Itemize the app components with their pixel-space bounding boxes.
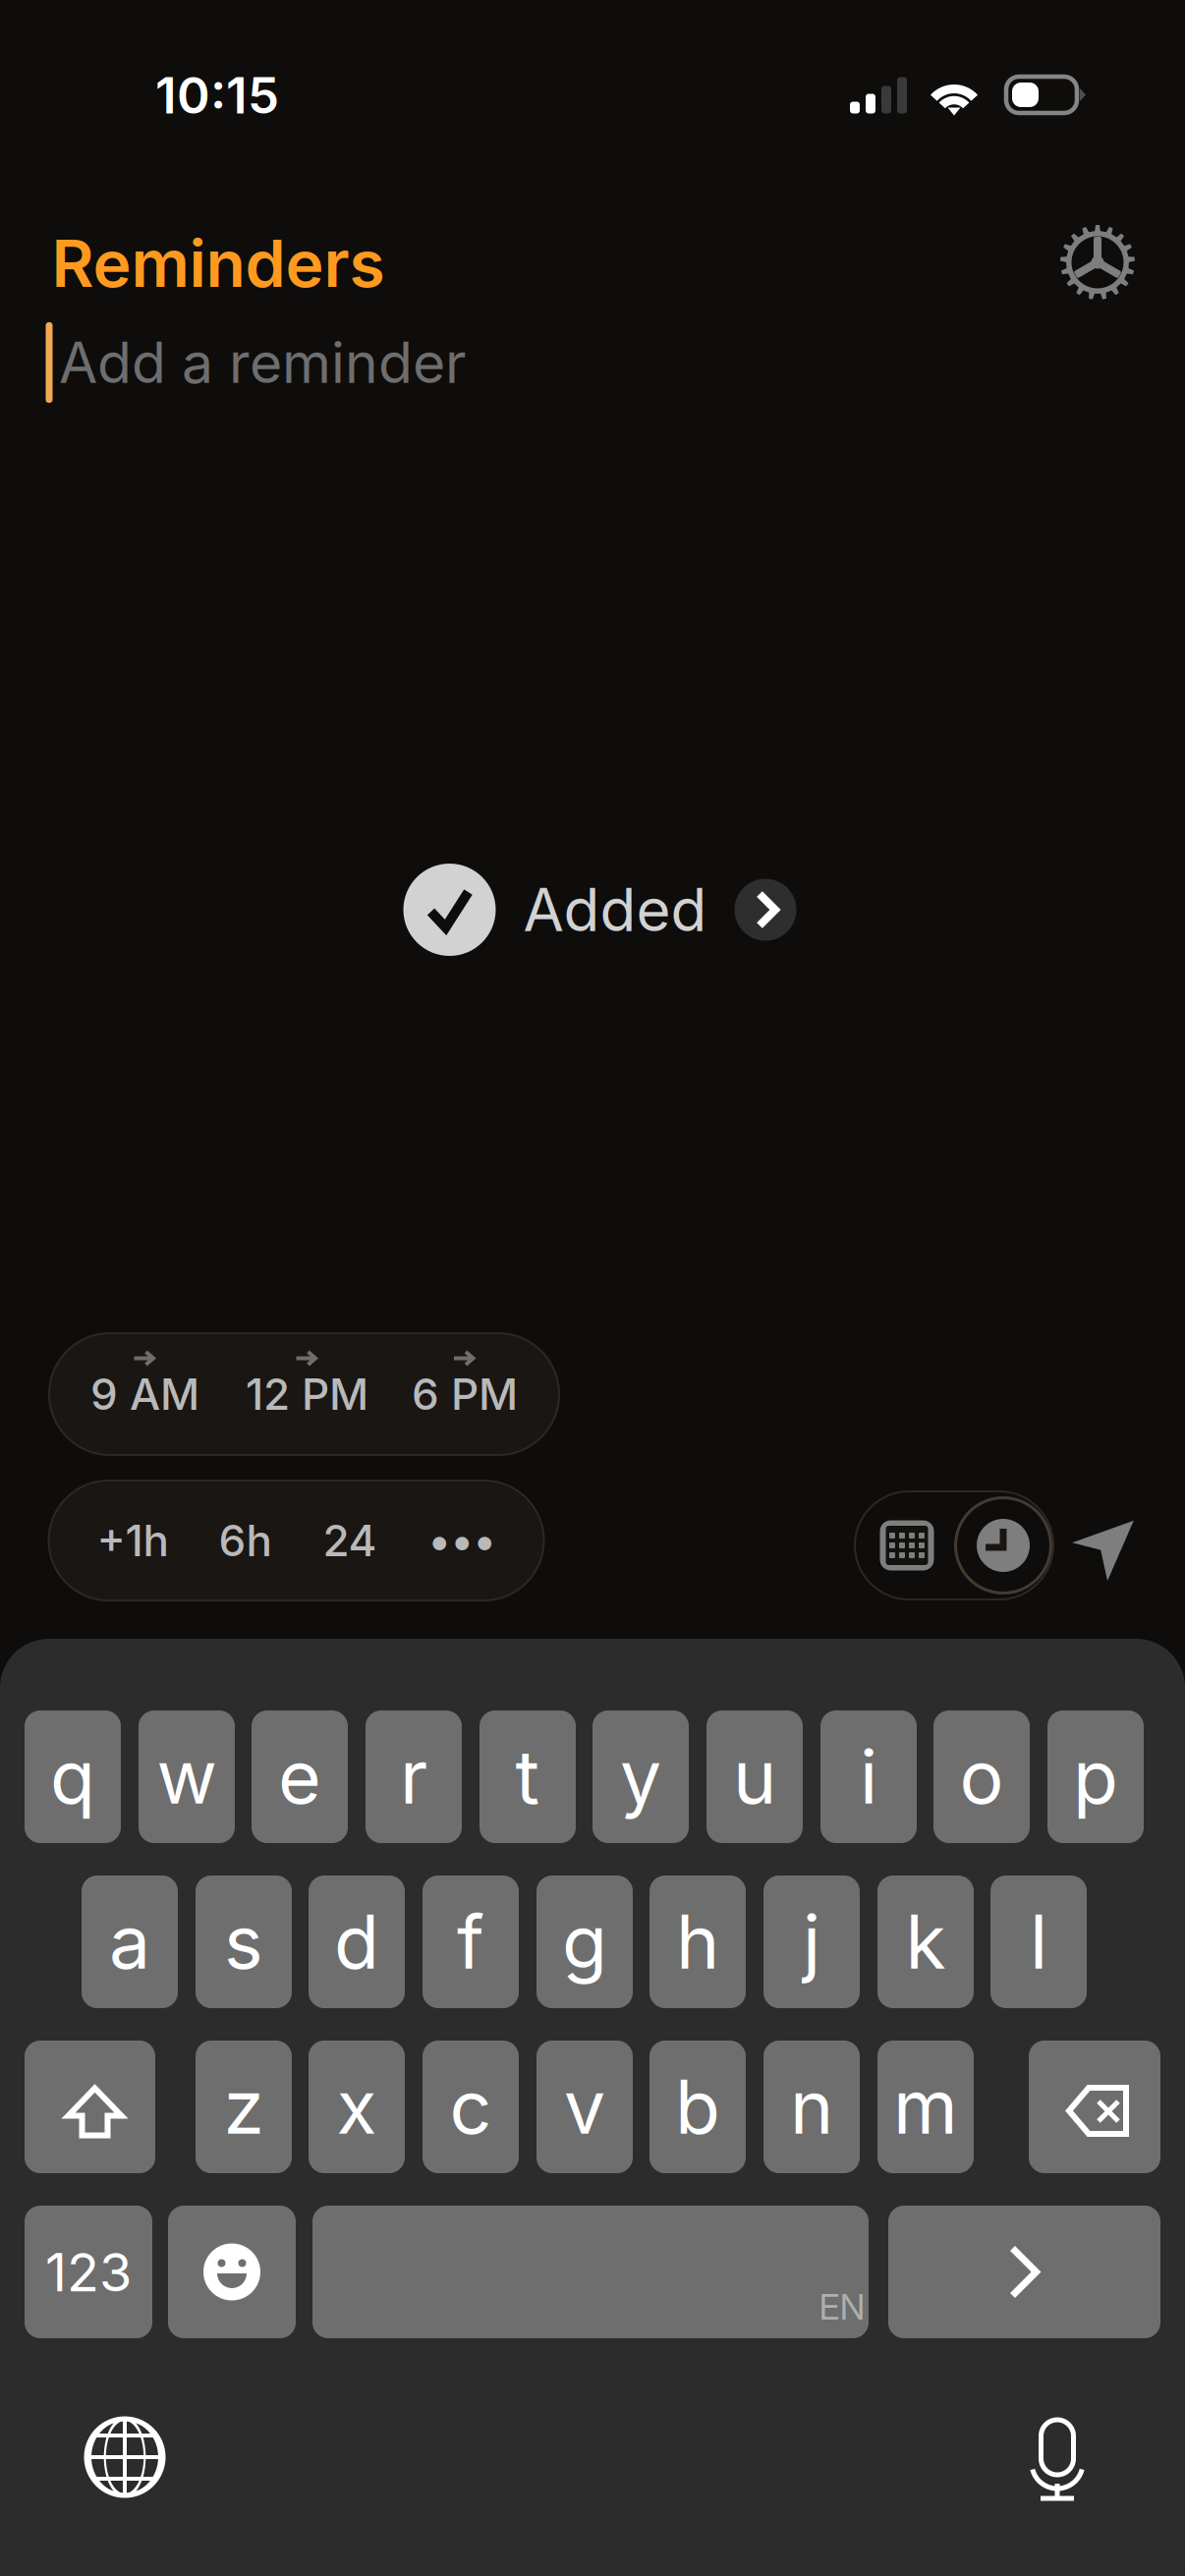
button[interactable]: m	[877, 2041, 974, 2173]
button[interactable]: Time	[956, 1498, 1051, 1593]
staticText: p	[1073, 1732, 1118, 1821]
staticText: +1h	[97, 1514, 169, 1567]
button[interactable]: Calendar	[880, 1520, 934, 1570]
button[interactable]: o	[933, 1710, 1030, 1843]
staticText: 6 PM	[412, 1368, 518, 1420]
button[interactable]: Dictate	[1028, 2416, 1087, 2500]
button[interactable]: Emoji	[168, 2206, 296, 2338]
staticText: g	[562, 1897, 607, 1986]
staticText: •••	[428, 1514, 496, 1567]
button[interactable]: y	[592, 1710, 689, 1843]
button[interactable]: p	[1047, 1710, 1144, 1843]
button[interactable]: Settings	[1060, 225, 1135, 300]
staticText: j	[803, 1897, 820, 1986]
button[interactable]: Return	[888, 2206, 1160, 2338]
button[interactable]: g	[536, 1876, 633, 2008]
button[interactable]: 6h	[219, 1514, 272, 1567]
button[interactable]: Location	[1078, 1519, 1134, 1575]
staticText: u	[733, 1732, 776, 1821]
staticText: e	[278, 1732, 321, 1821]
button[interactable]: Reminders	[52, 224, 385, 303]
button[interactable]: d	[309, 1876, 405, 2008]
staticText: y	[620, 1732, 661, 1821]
staticText: k	[905, 1897, 946, 1986]
button[interactable]: 9 AM	[90, 1368, 199, 1420]
staticText: o	[959, 1732, 1004, 1821]
button[interactable]: 12 PM	[246, 1368, 368, 1420]
button[interactable]: Delete	[1029, 2041, 1160, 2173]
staticText: 6h	[219, 1514, 272, 1567]
button[interactable]: u	[706, 1710, 803, 1843]
button[interactable]: Added	[403, 864, 796, 956]
button[interactable]: k	[877, 1876, 974, 2008]
staticText: 9 AM	[90, 1368, 199, 1420]
button[interactable]: +1h	[97, 1514, 169, 1567]
staticText: n	[790, 2062, 833, 2151]
staticText: l	[1030, 1897, 1047, 1986]
button[interactable]: v	[536, 2041, 633, 2173]
button[interactable]: 24	[323, 1514, 377, 1567]
staticText: x	[337, 2062, 377, 2151]
staticText: c	[450, 2062, 492, 2151]
button[interactable]: Shift	[25, 2041, 155, 2173]
staticText: a	[109, 1897, 150, 1986]
button[interactable]: f	[423, 1876, 519, 2008]
button[interactable]: w	[139, 1710, 235, 1843]
button[interactable]: h	[649, 1876, 746, 2008]
button[interactable]: i	[820, 1710, 917, 1843]
button[interactable]: b	[649, 2041, 746, 2173]
staticText: 123	[45, 2240, 132, 2304]
staticText: 12 PM	[246, 1368, 368, 1420]
staticText: Reminders	[52, 224, 385, 303]
staticText: f	[457, 1897, 484, 1986]
button[interactable]: r	[366, 1710, 462, 1843]
staticText: t	[515, 1732, 540, 1821]
staticText: 24	[323, 1514, 377, 1567]
button[interactable]: space	[312, 2206, 869, 2338]
button[interactable]: c	[423, 2041, 519, 2173]
button[interactable]: 6 PM	[412, 1368, 518, 1420]
staticText: m	[893, 2062, 958, 2151]
button[interactable]: l	[990, 1876, 1087, 2008]
staticText: s	[224, 1897, 263, 1986]
button[interactable]: q	[25, 1710, 121, 1843]
staticText: w	[157, 1732, 217, 1821]
button[interactable]: z	[196, 2041, 292, 2173]
staticText: z	[224, 2062, 264, 2151]
button[interactable]: a	[82, 1876, 178, 2008]
staticText: r	[400, 1732, 427, 1821]
button[interactable]: Change keyboard	[85, 2417, 165, 2497]
button[interactable]: Numbers	[25, 2206, 152, 2338]
staticText: v	[564, 2062, 605, 2151]
staticText: i	[860, 1732, 877, 1821]
button[interactable]: t	[480, 1710, 576, 1843]
button[interactable]: x	[309, 2041, 405, 2173]
button[interactable]: s	[196, 1876, 292, 2008]
button[interactable]: e	[252, 1710, 348, 1843]
button[interactable]: n	[763, 2041, 860, 2173]
staticText: b	[675, 2062, 720, 2151]
staticText: 10:15	[155, 65, 279, 126]
staticText: d	[334, 1897, 379, 1986]
staticText: Added	[523, 874, 707, 945]
staticText: h	[676, 1897, 719, 1986]
staticText: EN	[819, 2285, 865, 2328]
button[interactable]: j	[763, 1876, 860, 2008]
button[interactable]: •••	[428, 1514, 496, 1567]
staticText: q	[50, 1732, 95, 1821]
staticText: Add a reminder	[59, 329, 466, 396]
